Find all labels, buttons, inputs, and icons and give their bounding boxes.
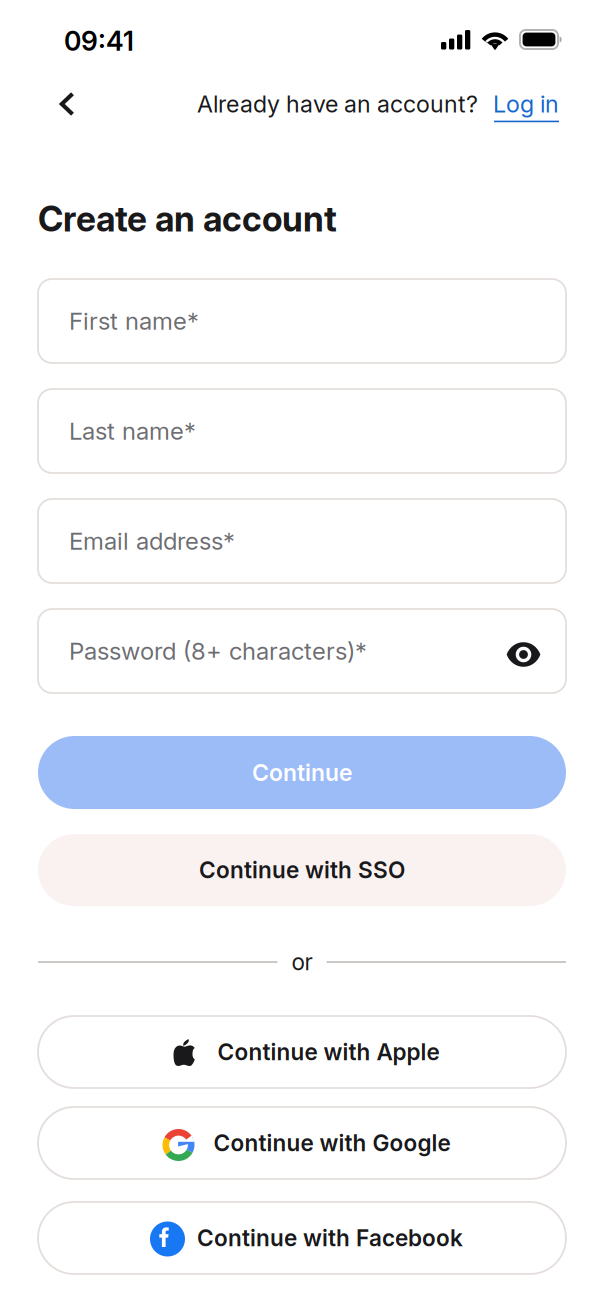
button[interactable]: Continue with SSO	[38, 834, 566, 906]
button[interactable]: Continue with Google	[38, 1107, 566, 1179]
staticText: 09:41	[64, 25, 134, 57]
button[interactable]: Email address*	[38, 499, 566, 583]
button[interactable]: Last name*	[38, 389, 566, 473]
staticText: Last name*	[69, 416, 196, 445]
staticText: Continue	[252, 758, 352, 786]
button[interactable]: Log in	[478, 86, 559, 122]
staticText: Create an account	[38, 198, 337, 240]
staticText: First name*	[69, 306, 199, 335]
staticText: Password (8+ characters)*	[69, 636, 367, 665]
button[interactable]: Continue	[38, 736, 566, 809]
button[interactable]: Back	[0, 74, 96, 126]
staticText: Continue with Google	[213, 1129, 450, 1157]
staticText: Continue with SSO	[199, 856, 405, 884]
staticText: Log in	[493, 90, 559, 118]
staticText: Continue with Facebook	[197, 1224, 463, 1252]
button[interactable]: Continue with Facebook	[38, 1202, 566, 1274]
staticText: Already have an account?	[197, 90, 478, 118]
staticText: or	[291, 948, 312, 976]
button[interactable]: Password (8+ characters)*	[38, 609, 566, 693]
button[interactable]: First name*	[38, 279, 566, 363]
button[interactable]: Continue with Apple	[38, 1016, 566, 1088]
staticText: Continue with Apple	[217, 1038, 439, 1066]
staticText: Email address*	[69, 526, 235, 555]
